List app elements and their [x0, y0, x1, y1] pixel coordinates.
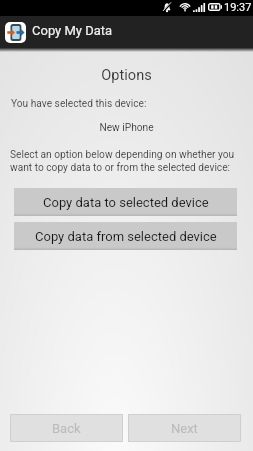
staticText: Copy data from selected device	[35, 229, 217, 244]
button[interactable]: Copy data from selected device	[14, 222, 237, 250]
staticText: You have selected this device:	[11, 98, 147, 110]
button[interactable]: Copy data to selected device	[14, 188, 237, 216]
staticText: 19:37	[224, 1, 252, 14]
button[interactable]: Next	[128, 414, 241, 442]
staticText: New iPhone	[0, 122, 253, 134]
staticText: Select an option below depending on whet…	[10, 149, 242, 173]
staticText: Next	[171, 421, 198, 436]
staticText: Options	[0, 66, 253, 83]
staticText: Copy data to selected device	[43, 195, 209, 210]
staticText: Copy My Data	[32, 23, 113, 38]
staticText: Back	[52, 421, 81, 436]
button[interactable]: Back	[10, 414, 123, 442]
